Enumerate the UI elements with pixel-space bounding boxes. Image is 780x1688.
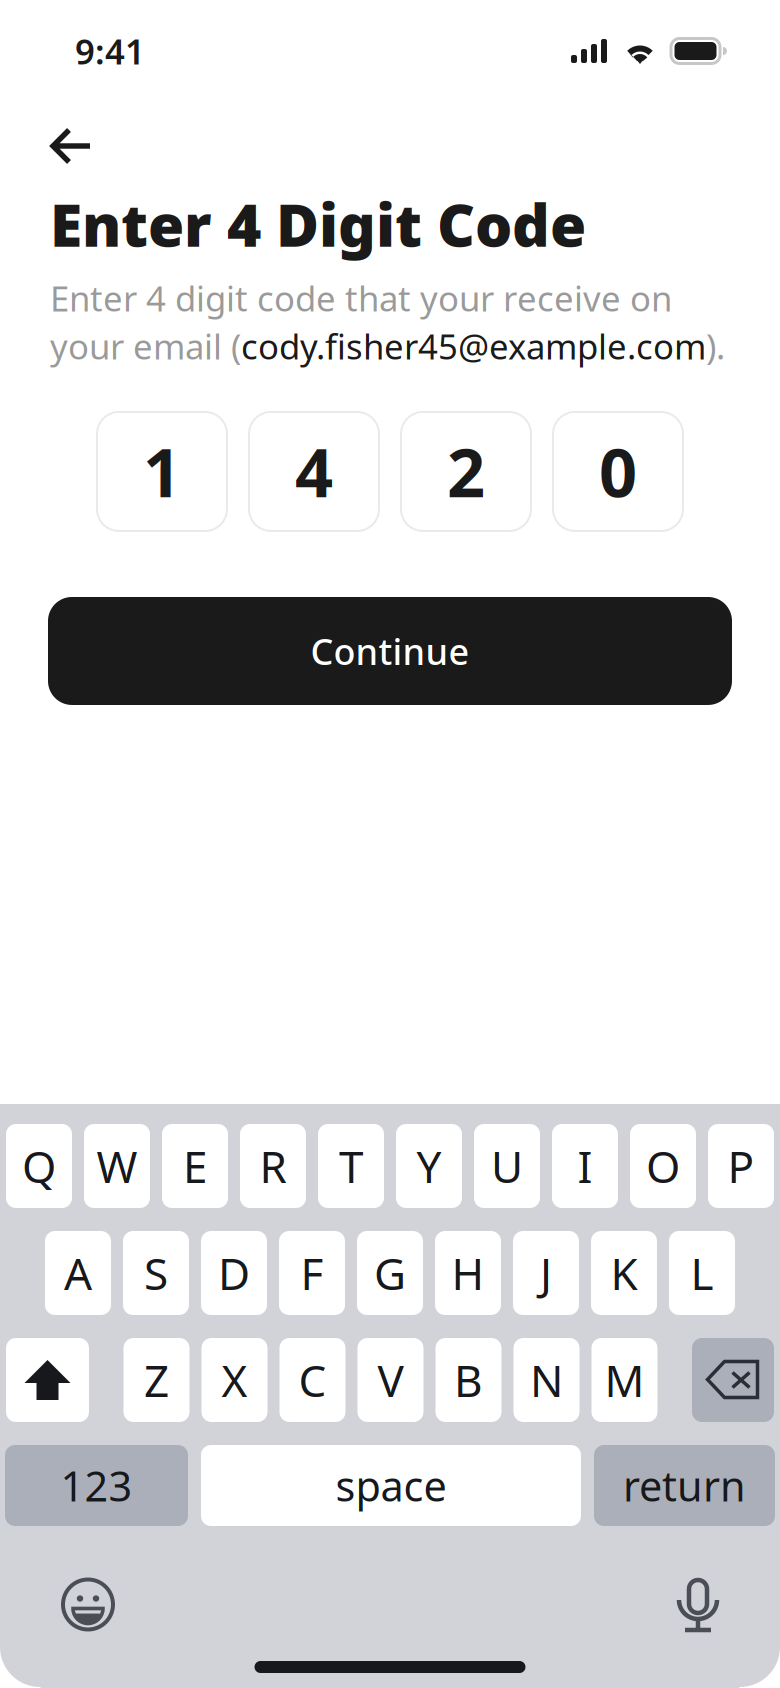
button[interactable]: return bbox=[594, 1445, 775, 1526]
button[interactable]: 0 bbox=[553, 412, 683, 531]
staticText: I bbox=[577, 1137, 592, 1195]
button[interactable]: 2 bbox=[401, 412, 531, 531]
staticText: S bbox=[144, 1244, 168, 1302]
staticText: your email ( bbox=[50, 323, 241, 369]
button[interactable]: X bbox=[201, 1338, 267, 1422]
button[interactable]: S bbox=[123, 1231, 189, 1315]
staticText: X bbox=[221, 1351, 247, 1409]
button[interactable]: I bbox=[552, 1124, 618, 1208]
staticText: ). bbox=[706, 323, 725, 369]
staticText: Continue bbox=[310, 627, 469, 675]
staticText: G bbox=[374, 1244, 406, 1302]
staticText: E bbox=[183, 1137, 207, 1195]
button[interactable]: T bbox=[318, 1124, 384, 1208]
button[interactable]: P bbox=[708, 1124, 774, 1208]
button[interactable]: D bbox=[201, 1231, 267, 1315]
staticText: Enter 4 Digit Code bbox=[50, 185, 586, 263]
button[interactable]: Y bbox=[396, 1124, 462, 1208]
staticText: P bbox=[727, 1137, 754, 1195]
staticText: K bbox=[610, 1244, 637, 1302]
staticText: Q bbox=[22, 1137, 56, 1195]
staticText: space bbox=[335, 1458, 446, 1513]
staticText: B bbox=[454, 1351, 483, 1409]
staticText: H bbox=[451, 1244, 484, 1302]
button[interactable]: A bbox=[45, 1231, 111, 1315]
button[interactable]: 123 bbox=[5, 1445, 188, 1526]
staticText: W bbox=[96, 1137, 137, 1195]
button[interactable]: C bbox=[279, 1338, 345, 1422]
button[interactable]: Shift bbox=[6, 1338, 89, 1422]
button[interactable]: R bbox=[240, 1124, 306, 1208]
staticText: M bbox=[604, 1351, 644, 1409]
button[interactable]: Q bbox=[6, 1124, 72, 1208]
button[interactable]: J bbox=[513, 1231, 579, 1315]
button[interactable]: M bbox=[591, 1338, 657, 1422]
staticText: Y bbox=[416, 1137, 441, 1195]
staticText: cody.fisher45@example.com bbox=[241, 323, 706, 369]
button[interactable]: B bbox=[435, 1338, 501, 1422]
button[interactable]: E bbox=[162, 1124, 228, 1208]
staticText: 2 bbox=[447, 427, 485, 516]
staticText: 1 bbox=[143, 427, 181, 516]
staticText: Z bbox=[144, 1351, 169, 1409]
staticText: return bbox=[623, 1458, 746, 1513]
staticText: F bbox=[300, 1244, 323, 1302]
button[interactable]: F bbox=[279, 1231, 345, 1315]
button[interactable]: W bbox=[84, 1124, 150, 1208]
staticText: A bbox=[64, 1244, 92, 1302]
staticText: V bbox=[377, 1351, 403, 1409]
button[interactable]: space bbox=[201, 1445, 581, 1526]
button[interactable]: L bbox=[669, 1231, 735, 1315]
button[interactable]: Emoji keyboard bbox=[61, 1577, 116, 1632]
button[interactable]: H bbox=[435, 1231, 501, 1315]
button[interactable]: 4 bbox=[249, 412, 379, 531]
staticText: D bbox=[218, 1244, 250, 1302]
staticText: Enter 4 digit code that your receive on bbox=[50, 275, 672, 321]
staticText: 123 bbox=[60, 1458, 132, 1513]
button[interactable]: U bbox=[474, 1124, 540, 1208]
button[interactable]: O bbox=[630, 1124, 696, 1208]
staticText: N bbox=[530, 1351, 563, 1409]
button[interactable]: Z bbox=[123, 1338, 189, 1422]
staticText: O bbox=[646, 1137, 680, 1195]
button[interactable]: Back bbox=[50, 127, 93, 165]
staticText: C bbox=[298, 1351, 326, 1409]
staticText: 4 bbox=[295, 427, 333, 516]
button[interactable]: Continue bbox=[48, 597, 732, 705]
button[interactable]: Delete bbox=[692, 1338, 774, 1422]
staticText: J bbox=[540, 1244, 552, 1302]
button[interactable]: G bbox=[357, 1231, 423, 1315]
staticText: 9:41 bbox=[75, 28, 145, 74]
staticText: U bbox=[491, 1137, 523, 1195]
button[interactable]: V bbox=[357, 1338, 423, 1422]
staticText: T bbox=[339, 1137, 363, 1195]
staticText: R bbox=[259, 1137, 286, 1195]
button[interactable]: K bbox=[591, 1231, 657, 1315]
button[interactable]: N bbox=[513, 1338, 579, 1422]
staticText: L bbox=[690, 1244, 713, 1302]
button[interactable]: 1 bbox=[97, 412, 227, 531]
staticText: 0 bbox=[599, 427, 637, 516]
button[interactable]: Dictation bbox=[679, 1577, 718, 1633]
